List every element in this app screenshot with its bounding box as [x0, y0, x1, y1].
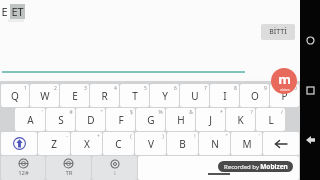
staticText: 12#	[18, 169, 29, 177]
staticText: B	[179, 137, 186, 151]
staticText: H	[177, 113, 185, 127]
staticText: 1	[24, 85, 27, 92]
staticText: !	[194, 133, 196, 140]
button[interactable]: 12#	[1, 156, 45, 180]
staticText: Y	[162, 89, 168, 103]
staticText: V	[148, 137, 154, 151]
staticText: "	[225, 133, 228, 140]
staticText: S	[58, 113, 64, 127]
staticText: U	[191, 89, 199, 103]
staticText: Mobizen	[260, 162, 288, 171]
button[interactable]: S	[46, 108, 75, 131]
button[interactable]: N	[199, 132, 230, 155]
button[interactable]: G	[136, 108, 165, 131]
button[interactable]: Shift	[1, 132, 37, 155]
staticText: (	[130, 133, 132, 140]
button[interactable]: Y	[150, 84, 179, 107]
staticText: 4	[114, 85, 117, 92]
button[interactable]: I	[210, 84, 239, 107]
staticText: W	[40, 89, 50, 103]
staticText: *	[220, 109, 223, 116]
button[interactable]: B	[167, 132, 198, 155]
button[interactable]: Backspace	[263, 132, 299, 155]
staticText: -	[66, 133, 68, 140]
staticText: I	[223, 89, 227, 103]
staticText: F	[118, 113, 124, 127]
staticText: 2	[54, 85, 57, 92]
staticText: +	[97, 133, 100, 140]
staticText: D	[87, 113, 95, 127]
button[interactable]: J	[196, 108, 225, 131]
staticText: E	[1, 4, 8, 19]
staticText: 7	[204, 85, 207, 92]
staticText: 9	[264, 85, 267, 92]
staticText: $	[130, 109, 133, 116]
button[interactable]: P	[270, 84, 299, 107]
button[interactable]: Recents	[300, 30, 320, 50]
button[interactable]: Home	[300, 80, 320, 100]
button[interactable]: W	[30, 84, 59, 107]
staticText: Recorded by	[223, 163, 260, 171]
button[interactable]: Space	[138, 156, 299, 180]
button[interactable]: L	[256, 108, 285, 131]
staticText: X	[84, 137, 90, 151]
staticText: E	[72, 89, 78, 103]
staticText: T	[132, 89, 138, 103]
staticText: obizen	[280, 88, 290, 92]
button[interactable]: U	[180, 84, 209, 107]
staticText: #	[69, 109, 73, 116]
button[interactable]: M	[231, 132, 262, 155]
button[interactable]: V	[135, 132, 166, 155]
button[interactable]: A	[15, 108, 45, 131]
staticText: G	[147, 113, 155, 127]
button[interactable]: H	[166, 108, 195, 131]
button[interactable]: T	[120, 84, 149, 107]
staticText: A	[27, 113, 34, 127]
button[interactable]: E	[60, 84, 89, 107]
staticText: 3	[84, 85, 87, 92]
staticText: 0	[294, 85, 297, 92]
staticText: K	[237, 113, 244, 127]
staticText: "	[100, 109, 103, 116]
staticText: C	[115, 137, 122, 151]
button[interactable]: Q	[1, 84, 29, 107]
button[interactable]: D	[76, 108, 105, 131]
staticText: '	[258, 133, 260, 140]
staticText: M	[242, 137, 252, 151]
button[interactable]: TR	[46, 156, 91, 180]
staticText: 8	[234, 85, 237, 92]
button[interactable]: BİTTİ	[261, 24, 295, 40]
button[interactable]: O	[240, 84, 269, 107]
button[interactable]: Back	[300, 130, 320, 150]
button[interactable]: X	[71, 132, 102, 155]
button[interactable]: R	[90, 84, 119, 107]
button[interactable]: C	[103, 132, 134, 155]
staticText: P	[281, 89, 288, 103]
staticText: BİTTİ	[269, 27, 287, 37]
staticText: %	[158, 109, 163, 116]
staticText: L	[268, 113, 274, 127]
staticText: 6	[174, 85, 177, 92]
staticText: '	[41, 109, 43, 116]
staticText: 5	[144, 85, 147, 92]
staticText: TR	[65, 169, 73, 177]
staticText: )	[162, 133, 164, 140]
staticText: R	[101, 89, 108, 103]
staticText: O	[251, 89, 259, 103]
button[interactable]: Z	[38, 132, 70, 155]
staticText: &	[189, 109, 193, 116]
staticText: /	[281, 109, 283, 116]
staticText: m	[278, 70, 291, 88]
staticText: N	[211, 137, 219, 151]
staticText: Q	[11, 89, 19, 103]
button[interactable]: Keyboard settings	[92, 156, 137, 180]
staticText: ?	[250, 109, 253, 116]
staticText: J	[209, 113, 212, 127]
button[interactable]: F	[106, 108, 135, 131]
staticText: Z	[51, 137, 57, 151]
staticText: ET	[11, 4, 24, 19]
button[interactable]: K	[226, 108, 255, 131]
staticText: ¡	[114, 169, 116, 176]
